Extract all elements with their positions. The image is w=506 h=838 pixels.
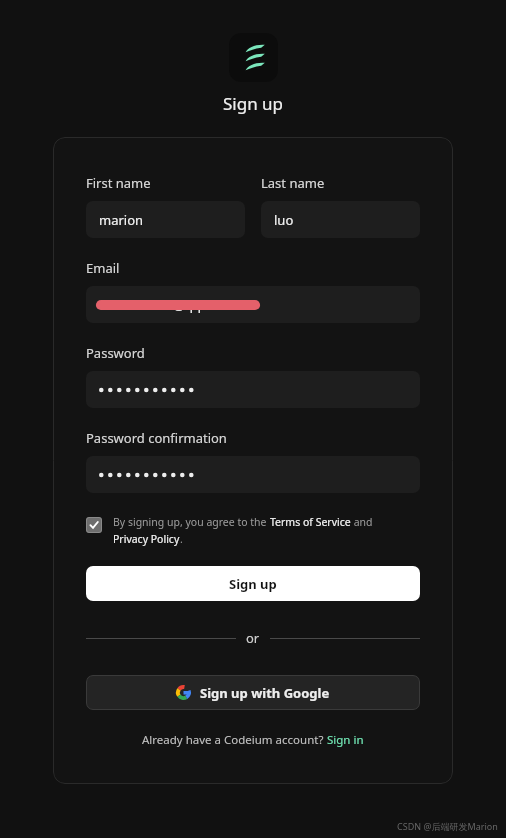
staticText: Sign in xyxy=(327,732,364,748)
button[interactable] xyxy=(86,371,420,408)
staticText: luo xyxy=(274,211,294,229)
staticText: Last name xyxy=(261,174,325,192)
staticText: . xyxy=(180,532,183,546)
staticText: Already have a Codeium account? xyxy=(142,732,327,748)
staticText: Email xyxy=(86,259,120,277)
staticText: First name xyxy=(86,174,151,192)
button[interactable]: Already have a Codeium account? xyxy=(86,732,420,748)
button[interactable]: luo xyxy=(261,201,420,238)
staticText: Privacy Policy xyxy=(113,532,180,546)
button[interactable]: Sign up with Google xyxy=(86,675,420,710)
staticText: or xyxy=(246,629,260,647)
staticText: Terms of Service xyxy=(270,515,351,529)
staticText: 7021751503@qq.com xyxy=(99,296,231,314)
button[interactable]: Codeium logo xyxy=(229,33,278,82)
staticText: Sign up xyxy=(229,575,277,593)
staticText: and xyxy=(351,515,373,529)
staticText: marion xyxy=(99,211,144,229)
button[interactable]: Sign up xyxy=(86,566,420,601)
staticText: By signing up, you agree to the xyxy=(113,515,270,529)
staticText: Password xyxy=(86,344,145,362)
button[interactable]: Agree to terms xyxy=(86,515,420,546)
button[interactable] xyxy=(86,456,420,493)
staticText: Sign up xyxy=(223,92,284,115)
other: Agree to terms xyxy=(86,517,102,533)
staticText: CSDN @后端研发Marion xyxy=(397,820,498,832)
button[interactable]: marion xyxy=(86,201,245,238)
staticText: Password confirmation xyxy=(86,429,227,447)
button[interactable]: 7021751503@qq.com xyxy=(86,286,420,323)
staticText: Sign up with Google xyxy=(200,684,330,702)
